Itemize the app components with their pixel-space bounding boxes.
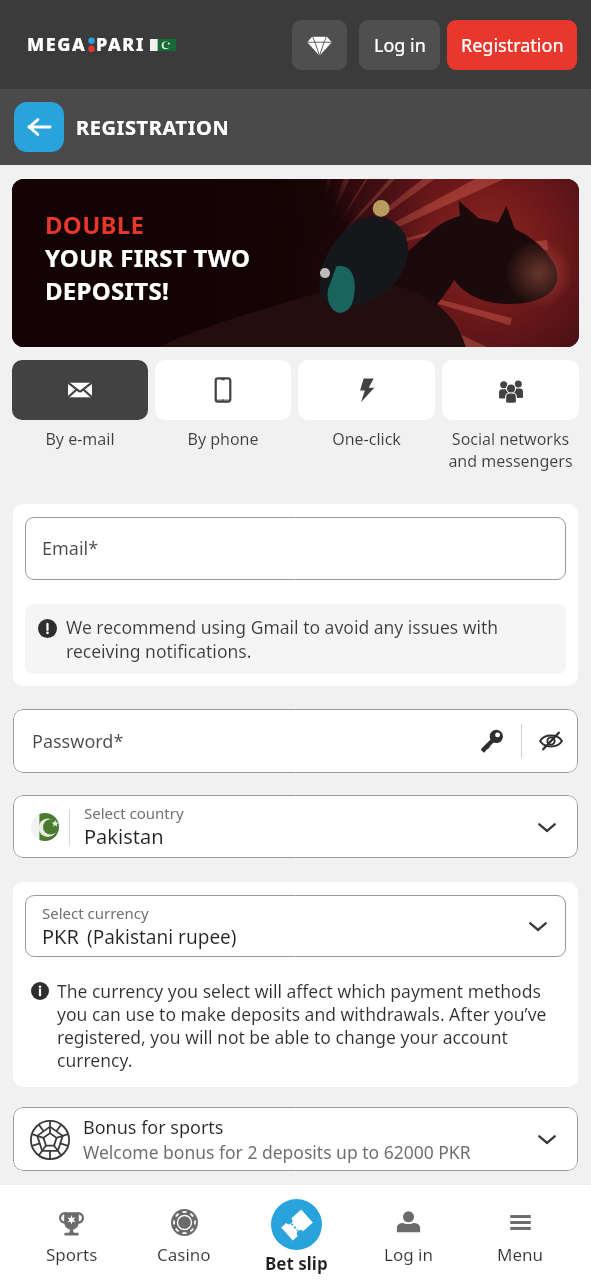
staticText: PKR [42,923,79,950]
staticText: PARI [96,32,145,57]
staticText: Pakistan [84,823,164,850]
staticText: By phone [187,428,259,450]
staticText: Casino [157,1243,211,1266]
staticText: Select currency [42,903,149,923]
staticText: Log in [374,33,426,58]
button[interactable]: By phone [155,360,291,450]
staticText: Log in [384,1243,433,1266]
staticText: YOUR FIRST TWO [45,241,251,274]
staticText: Welcome bonus for 2 deposits up to 62000… [83,1140,471,1164]
button[interactable]: Bonuses [292,20,347,70]
button[interactable]: Bet slip [240,1185,352,1280]
staticText: Password* [32,729,124,754]
button[interactable]: Email* [25,517,566,580]
button[interactable]: Sports [15,1185,128,1280]
button[interactable]: Log in [352,1185,464,1280]
staticText: Select country [84,803,184,823]
staticText: MEGA [27,32,87,57]
button[interactable]: Social networks and messengers [442,360,579,472]
staticText: Menu [497,1243,544,1266]
staticText: By e-mail [45,428,115,450]
staticText: (Pakistani rupee) [87,924,237,950]
staticText: One-click [332,428,401,450]
button[interactable]: Registration [447,20,577,70]
button[interactable]: Select country [13,795,578,858]
staticText: Bet slip [265,1252,328,1275]
staticText: Registration [461,33,564,58]
staticText: DOUBLE [45,208,145,241]
staticText: REGISTRATION [76,114,230,141]
staticText: Sports [46,1243,98,1266]
staticText: The currency you select will affect whic… [57,979,566,1073]
staticText: We recommend using Gmail to avoid any is… [66,615,553,663]
staticText: DEPOSITS! [45,274,169,307]
button[interactable]: Menu [464,1185,576,1280]
staticText: Social networks and messengers [448,428,573,472]
staticText: Email* [42,536,99,561]
button[interactable]: Log in [359,20,440,70]
button[interactable]: Back [14,102,64,152]
staticText: Bonus for sports [83,1115,224,1140]
button[interactable]: Bonus for sports [13,1107,578,1171]
button[interactable]: One-click [298,360,435,450]
button[interactable]: Password* [13,709,578,773]
button[interactable]: By e-mail [12,360,148,450]
button[interactable]: Casino [128,1185,240,1280]
button[interactable]: Select currency [25,895,566,957]
